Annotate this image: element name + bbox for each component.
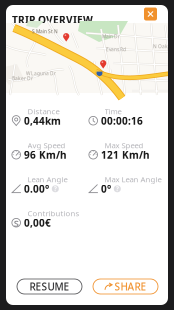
staticText: 0,00€	[24, 216, 51, 230]
staticText: S	[14, 217, 19, 229]
staticText: Avg Speed	[27, 140, 65, 150]
staticText: Time	[104, 106, 121, 116]
button[interactable]: SHARE	[93, 279, 158, 294]
staticText: 0,44km	[24, 114, 61, 128]
staticText: ?	[54, 184, 57, 193]
staticText: 0.00°	[24, 182, 49, 196]
button[interactable]: RESUME	[17, 279, 82, 294]
staticText: SHARE	[114, 280, 146, 293]
staticText: Lean Angle	[27, 174, 67, 184]
staticText: Distance	[27, 106, 59, 116]
staticText: W Laguna Dr	[26, 70, 56, 76]
staticText: N Oak	[153, 43, 168, 49]
staticText: Contributions	[27, 208, 79, 218]
staticText: Main Dr	[102, 33, 120, 39]
staticText: 00:00:16	[101, 114, 143, 128]
staticText: Max Lean Angle	[104, 174, 161, 184]
staticText: Evans Rd	[106, 46, 126, 52]
staticText: TRIP OVERVIEW	[12, 13, 93, 27]
staticText: Baker Dr	[12, 75, 33, 81]
staticText: S Main St N	[32, 28, 58, 34]
staticText: 0°	[101, 182, 111, 196]
staticText: ?	[116, 184, 119, 193]
staticText: Max Speed	[104, 140, 143, 150]
button[interactable]: Close	[144, 7, 157, 20]
staticText: 121 Km/h	[101, 148, 150, 162]
staticText: RESUME	[29, 280, 69, 293]
staticText: 96 Km/h	[24, 148, 67, 162]
